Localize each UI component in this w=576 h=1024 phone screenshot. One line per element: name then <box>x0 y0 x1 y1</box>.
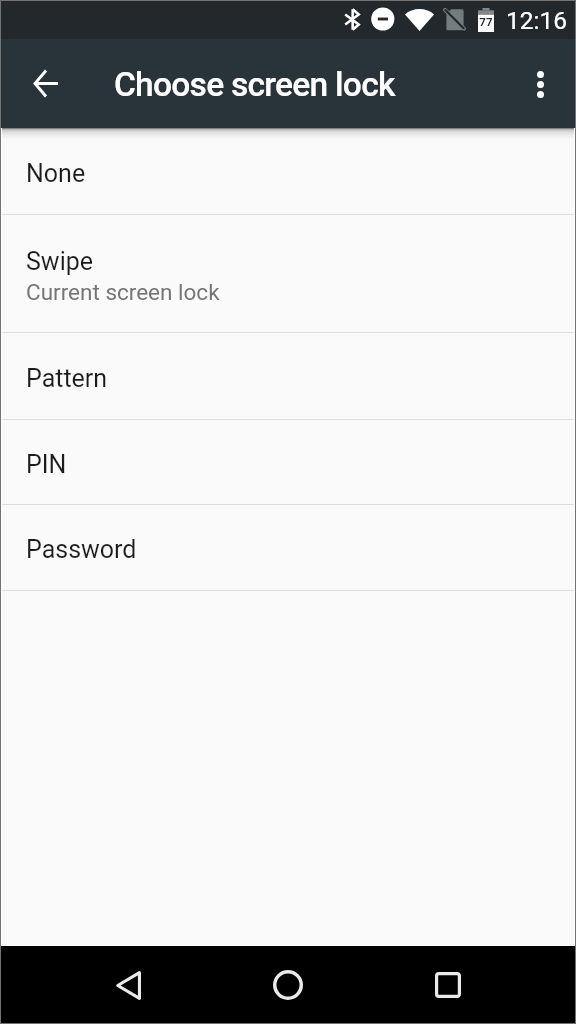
staticText: Current screen lock <box>26 279 220 305</box>
button[interactable]: Pattern <box>0 333 576 419</box>
button[interactable]: None <box>0 128 576 214</box>
button[interactable]: Swipe <box>0 215 576 332</box>
staticText: PIN <box>26 450 67 479</box>
staticText: Swipe <box>26 247 94 276</box>
staticText: Choose screen lock <box>114 65 395 104</box>
button[interactable]: Navigate up <box>17 55 74 112</box>
staticText: Pattern <box>26 364 108 393</box>
button[interactable]: Back <box>98 955 158 1015</box>
staticText: Password <box>26 535 137 564</box>
staticText: None <box>26 159 86 188</box>
button[interactable]: More options <box>512 56 568 112</box>
button[interactable]: Recent apps <box>418 955 478 1015</box>
button[interactable]: Home <box>258 955 318 1015</box>
staticText: 12:16 <box>506 6 568 35</box>
button[interactable]: PIN <box>0 420 576 504</box>
button[interactable]: Password <box>0 505 576 590</box>
staticText: 77 <box>479 15 493 28</box>
